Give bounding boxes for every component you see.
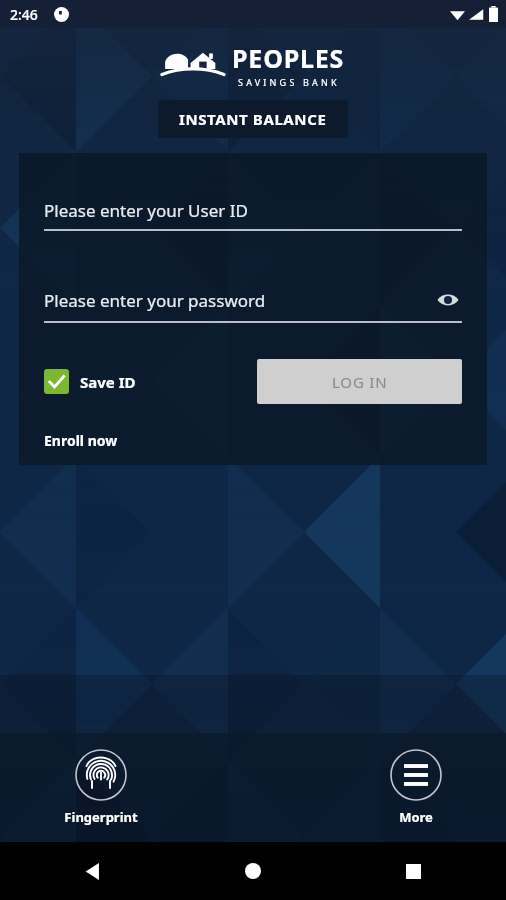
- button[interactable]: INSTANT BALANCE: [158, 100, 348, 138]
- staticText: Fingerprint: [64, 808, 138, 826]
- button[interactable]: Show password: [434, 286, 462, 314]
- staticText: Please enter your User ID: [44, 199, 248, 222]
- staticText: LOG IN: [332, 372, 388, 392]
- button[interactable]: Please enter your User ID: [44, 199, 462, 231]
- button[interactable]: Enroll now: [44, 431, 118, 450]
- staticText: More: [399, 808, 433, 826]
- staticText: PEOPLES: [232, 41, 345, 75]
- button[interactable]: Please enter your password: [44, 286, 462, 323]
- button[interactable]: Home: [236, 854, 270, 888]
- staticText: 2:46: [10, 5, 38, 24]
- staticText: Enroll now: [44, 431, 118, 450]
- staticText: SAVINGS BANK: [238, 76, 340, 88]
- button[interactable]: Save ID: [44, 369, 136, 394]
- staticText: INSTANT BALANCE: [179, 109, 327, 129]
- staticText: Please enter your password: [44, 289, 266, 312]
- button[interactable]: LOG IN: [257, 359, 462, 404]
- staticText: Save ID: [80, 372, 136, 392]
- button[interactable]: Back: [76, 854, 110, 888]
- button[interactable]: More: [386, 745, 446, 830]
- button[interactable]: Fingerprint: [60, 745, 142, 830]
- button[interactable]: Recents: [396, 854, 430, 888]
